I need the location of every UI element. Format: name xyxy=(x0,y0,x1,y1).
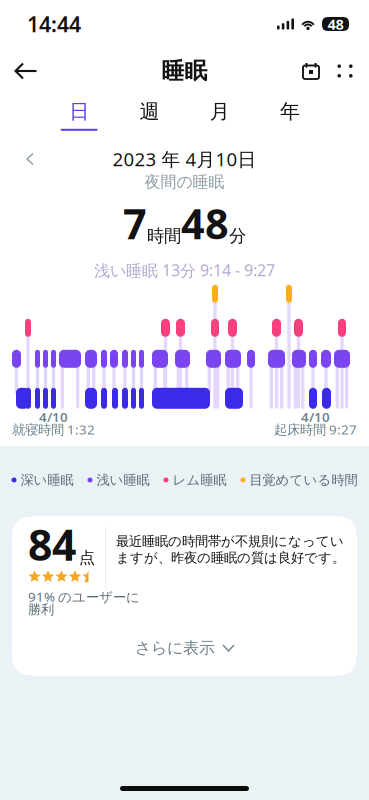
staticText: 浅い睡眠 xyxy=(96,472,149,488)
staticText: 点 xyxy=(79,548,95,567)
staticText: 2023 年 4月10日 xyxy=(112,147,256,171)
staticText: 最近睡眠の時間帯が不規則になっていますが、昨夜の睡眠の質は良好です。 xyxy=(116,533,345,566)
button[interactable]: さらに表示 xyxy=(12,616,357,676)
staticText: 年 xyxy=(280,99,300,124)
button[interactable]: Calendar xyxy=(293,51,329,91)
staticText: 91% のユーザーに xyxy=(28,588,140,605)
staticText: 48 xyxy=(181,196,229,251)
staticText: 深い睡眠 xyxy=(20,472,73,488)
staticText: 睡眠 xyxy=(161,57,207,85)
staticText: レム睡眠 xyxy=(172,472,226,488)
staticText: 就寝時間 1:32 xyxy=(12,420,95,438)
staticText: 14:44 xyxy=(27,10,81,38)
staticText: 84 xyxy=(28,516,76,572)
button[interactable]: More options xyxy=(329,51,361,91)
staticText: 4/10 xyxy=(39,408,68,426)
button[interactable]: Previous day xyxy=(10,145,50,173)
staticText: 4/10 xyxy=(301,408,330,426)
staticText: 分 xyxy=(229,225,246,246)
staticText: 7 xyxy=(123,196,147,251)
button[interactable]: 月 xyxy=(184,99,255,131)
button[interactable]: 日 xyxy=(44,99,114,131)
button[interactable]: 年 xyxy=(255,99,325,131)
staticText: 起床時間 9:27 xyxy=(274,420,357,438)
staticText: さらに表示 xyxy=(135,638,215,658)
staticText: 週 xyxy=(139,99,159,124)
staticText: 勝利 xyxy=(28,601,54,618)
staticText: 月 xyxy=(210,99,230,124)
button[interactable]: 週 xyxy=(114,99,184,131)
staticText: 目覚めている時間 xyxy=(249,472,357,488)
staticText: 48 xyxy=(327,14,343,34)
button[interactable]: Back xyxy=(4,51,48,91)
staticText: 日 xyxy=(69,99,89,124)
staticText: 夜間の睡眠 xyxy=(144,172,224,192)
staticText: 時間 xyxy=(147,225,181,246)
staticText: 浅い睡眠 13分 9:14 - 9:27 xyxy=(94,259,275,281)
